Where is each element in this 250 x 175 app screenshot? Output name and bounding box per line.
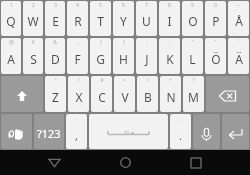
staticText: E (52, 13, 59, 29)
staticText: A (7, 51, 15, 67)
button[interactable]: @ (1, 38, 21, 74)
button[interactable]: " (182, 38, 203, 74)
button[interactable]: ˆ (205, 38, 226, 74)
button[interactable]: € (23, 38, 43, 74)
button[interactable]: ?123 (34, 114, 64, 149)
button[interactable]: # (91, 76, 112, 112)
button[interactable]: 6 (113, 1, 134, 36)
button[interactable]: ? (183, 76, 204, 112)
button[interactable]: 9 (182, 1, 203, 36)
staticText: 8 (168, 2, 171, 9)
staticText: I (167, 13, 172, 29)
button[interactable]: ; (159, 38, 180, 74)
button[interactable]: 2 (23, 1, 43, 36)
button[interactable]: Voice input (193, 114, 220, 149)
staticText: 0 (214, 2, 217, 9)
staticText: 7 (145, 2, 148, 9)
staticText: 5 (99, 2, 102, 9)
button[interactable]: Shift (1, 76, 43, 112)
staticText: Y (120, 13, 127, 29)
staticText: € (32, 39, 35, 46)
button[interactable]: + (160, 76, 181, 112)
staticText: M (188, 89, 199, 105)
staticText: ˆ (214, 39, 217, 46)
button[interactable]: 4 (67, 1, 88, 36)
staticText: @ (9, 39, 14, 46)
button[interactable]: Home (108, 150, 142, 175)
staticText: - (76, 116, 78, 123)
staticText: Ö (211, 51, 221, 67)
staticText: 6 (122, 2, 125, 9)
staticText: U (142, 13, 151, 29)
button[interactable]: 8 (159, 1, 180, 36)
staticText: H (119, 51, 128, 67)
staticText: : (180, 116, 182, 123)
staticText: : (146, 39, 148, 46)
staticText: P (212, 13, 220, 29)
staticText: 9 (191, 2, 194, 9)
button[interactable]: ~ (228, 1, 249, 36)
button[interactable]: ) (113, 38, 134, 74)
staticText: F (74, 51, 81, 67)
staticText: L (189, 51, 196, 67)
button[interactable]: Enter (222, 114, 249, 149)
button[interactable]: 1 (1, 1, 21, 36)
button[interactable]: 0 (205, 1, 226, 36)
button[interactable]: Recent apps (179, 150, 213, 175)
staticText: Ä (235, 51, 243, 67)
staticText: S (30, 51, 37, 67)
staticText: ) (123, 39, 125, 46)
staticText: & (53, 39, 57, 46)
staticText: ! (78, 77, 80, 84)
staticText: X (75, 89, 83, 105)
staticText: FI (124, 129, 130, 137)
button[interactable]: 3 (45, 1, 65, 36)
staticText: / (147, 77, 149, 84)
button[interactable]: & (45, 38, 65, 74)
button[interactable]: = (114, 76, 135, 112)
staticText: . (179, 128, 182, 143)
button[interactable]: ( (90, 38, 111, 74)
staticText: J (145, 51, 149, 67)
button[interactable]: : (136, 38, 157, 74)
button[interactable]: : (170, 114, 191, 149)
staticText: " (191, 39, 194, 46)
staticText: ? (192, 77, 195, 84)
staticText: ?123 (37, 126, 61, 141)
staticText: O (188, 13, 198, 29)
staticText: ° (54, 77, 57, 84)
staticText: B (144, 89, 152, 105)
staticText: K (166, 51, 174, 67)
staticText: C (98, 89, 106, 105)
button[interactable]: ˚ (228, 38, 249, 74)
button[interactable]: Space (89, 114, 168, 149)
button[interactable]: 7 (136, 1, 157, 36)
staticText: # (100, 77, 104, 84)
button[interactable]: 5 (90, 1, 111, 36)
staticText: T (97, 13, 104, 29)
button[interactable]: ! (68, 76, 89, 112)
staticText: R (74, 13, 82, 29)
button[interactable]: Backspace (206, 76, 249, 112)
staticText: 4 (76, 2, 79, 9)
staticText: Å (235, 13, 243, 29)
staticText: G (96, 51, 105, 67)
staticText: , (75, 128, 78, 143)
staticText: Z (52, 89, 59, 105)
staticText: 1 (10, 2, 13, 9)
staticText: ˚ (238, 39, 240, 46)
staticText: ; (169, 39, 171, 46)
button[interactable]: / (137, 76, 158, 112)
staticText: _ (76, 39, 79, 46)
staticText: + (169, 77, 172, 84)
staticText: 2 (32, 2, 35, 9)
staticText: N (166, 89, 176, 105)
staticText: ( (100, 39, 102, 46)
staticText: ~ (237, 2, 240, 9)
button[interactable]: Emoji and gesture input (1, 114, 32, 149)
button[interactable]: Back (37, 150, 71, 175)
button[interactable]: - (66, 114, 87, 149)
button[interactable]: _ (67, 38, 88, 74)
staticText: D (51, 51, 60, 67)
button[interactable]: ° (45, 76, 66, 112)
